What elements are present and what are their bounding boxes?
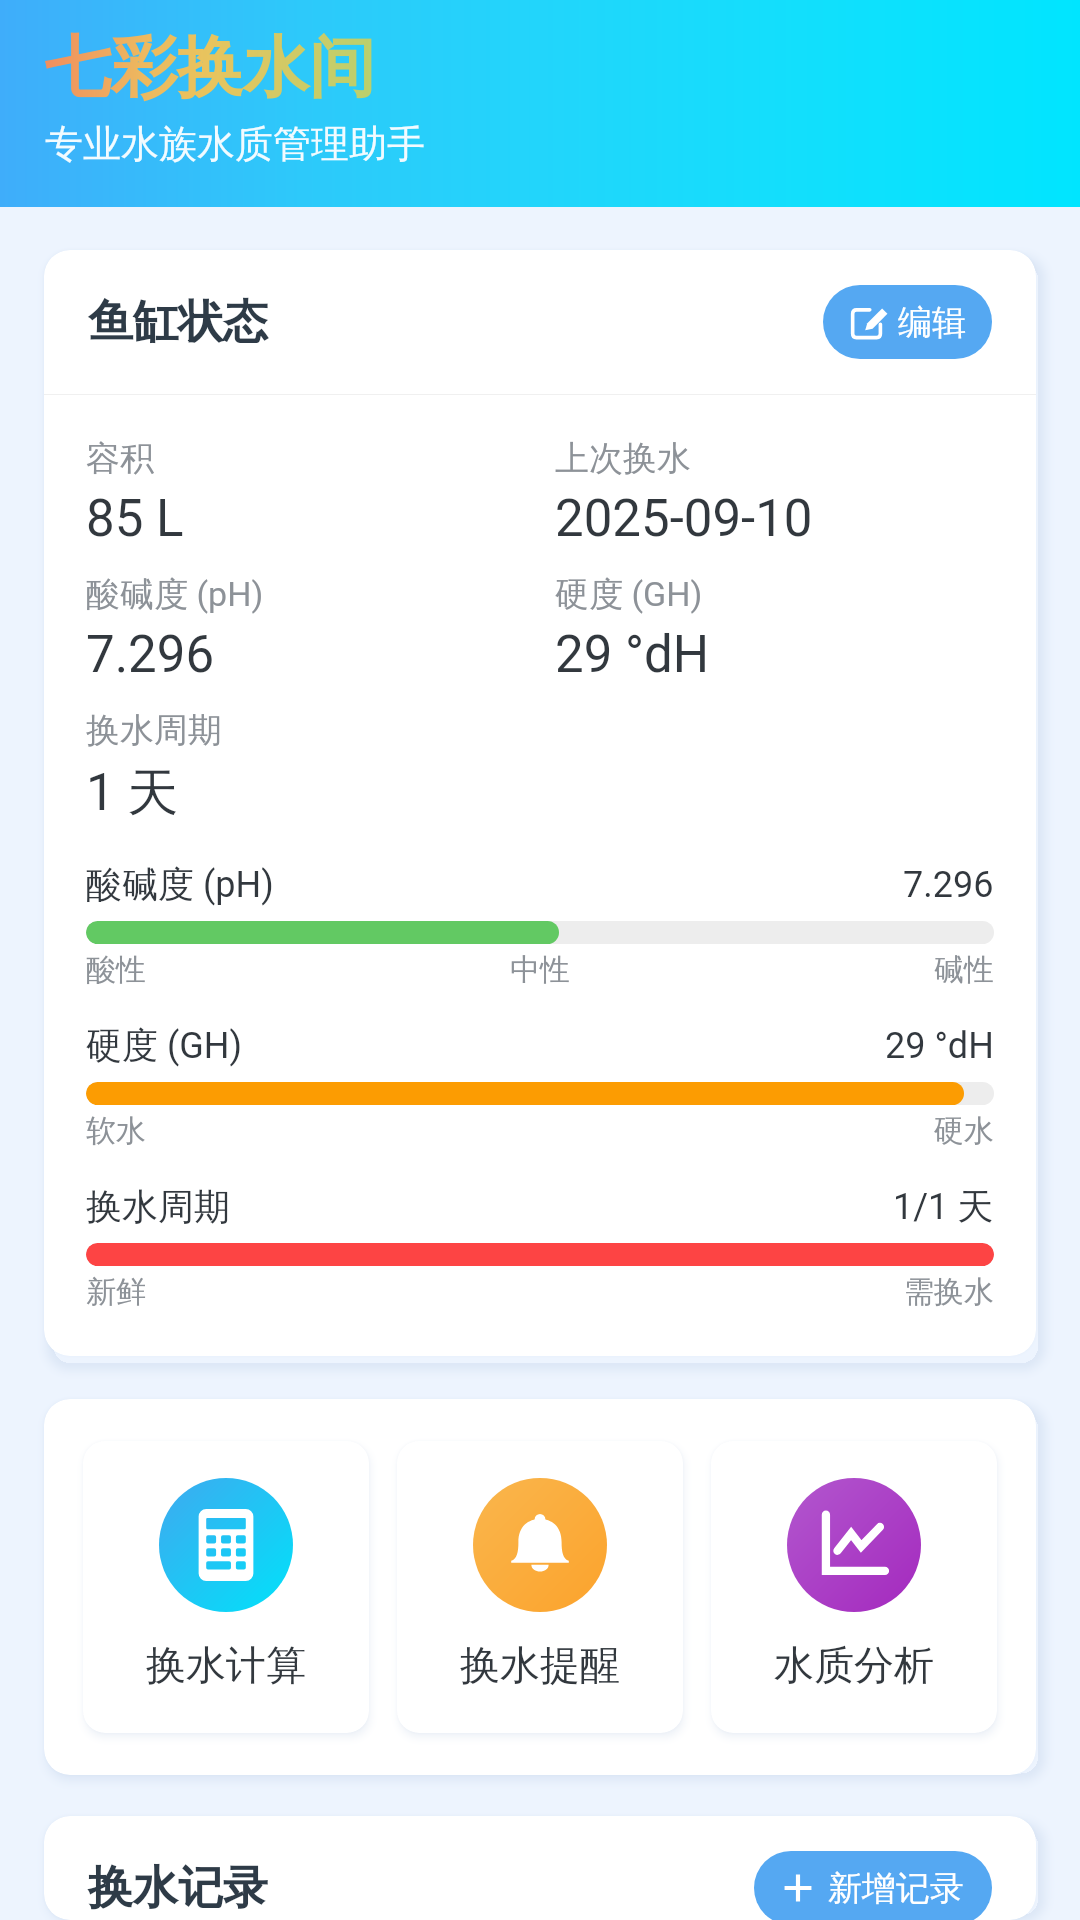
staticText: 7.296: [86, 625, 215, 685]
staticText: 酸碱度 (pH): [86, 862, 274, 907]
staticText: 29 °dH: [885, 1025, 994, 1067]
staticText: 酸性: [86, 951, 146, 989]
other: Edit: [850, 303, 888, 341]
staticText: 换水提醒: [460, 1640, 620, 1690]
staticText: 29 °dH: [555, 625, 710, 685]
button[interactable]: 换水计算: [83, 1441, 369, 1733]
staticText: 硬水: [934, 1112, 994, 1150]
staticText: 换水周期: [86, 709, 222, 752]
staticText: 新鲜: [86, 1273, 146, 1311]
staticText: 换水记录: [88, 1860, 268, 1917]
staticText: 容积: [86, 437, 154, 480]
staticText: 需换水: [904, 1273, 994, 1311]
button[interactable]: 换水提醒: [397, 1441, 683, 1733]
staticText: 酸碱度 (pH): [86, 573, 264, 616]
staticText: 1/1 天: [893, 1184, 994, 1229]
staticText: 水质分析: [774, 1640, 934, 1690]
staticText: 七彩换水间: [45, 26, 375, 109]
staticText: 新增记录: [828, 1867, 964, 1910]
staticText: 85 L: [86, 489, 184, 549]
staticText: 碱性: [934, 951, 994, 989]
staticText: 换水计算: [146, 1640, 306, 1690]
button[interactable]: 水质分析: [711, 1441, 997, 1733]
staticText: 鱼缸状态: [88, 294, 268, 351]
staticText: 中性: [510, 951, 570, 989]
button[interactable]: Edit: [823, 285, 992, 359]
staticText: 硬度 (GH): [86, 1023, 242, 1068]
staticText: 编辑: [898, 301, 966, 344]
staticText: 专业水族水质管理助手: [45, 120, 425, 168]
button[interactable]: Add: [754, 1851, 992, 1920]
other: Add: [782, 1872, 814, 1904]
staticText: 上次换水: [555, 437, 691, 480]
staticText: 换水周期: [86, 1184, 230, 1229]
staticText: 硬度 (GH): [555, 573, 703, 616]
staticText: 2025-09-10: [555, 489, 813, 549]
staticText: 7.296: [903, 864, 994, 906]
staticText: 1 天: [86, 761, 179, 825]
staticText: 软水: [86, 1112, 146, 1150]
